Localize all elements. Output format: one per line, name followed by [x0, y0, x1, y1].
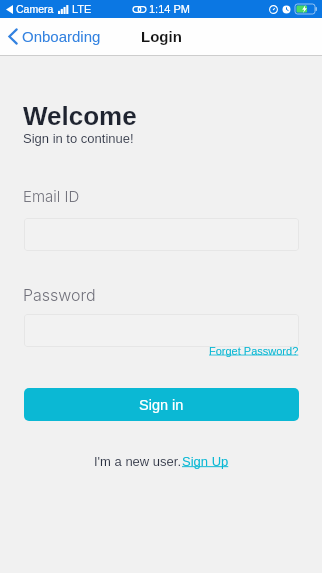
button[interactable]: Forget Password?	[209, 345, 299, 357]
staticText: Sign in	[139, 397, 184, 413]
staticText: Welcome	[23, 101, 137, 130]
staticText: Sign in to continue!	[23, 131, 134, 146]
staticText: 1:14 PM	[149, 3, 190, 15]
button[interactable]: Sign Up	[182, 454, 229, 469]
staticText: Email ID	[23, 187, 80, 205]
staticText: Login	[141, 28, 182, 45]
staticText: I'm a new user.	[94, 454, 182, 469]
staticText: Password	[23, 285, 96, 304]
button[interactable]: Sign in	[24, 388, 299, 421]
staticText: Camera	[16, 3, 54, 15]
button[interactable]: Onboarding	[5, 26, 109, 47]
staticText: LTE	[72, 3, 92, 15]
staticText: Onboarding	[22, 28, 101, 45]
